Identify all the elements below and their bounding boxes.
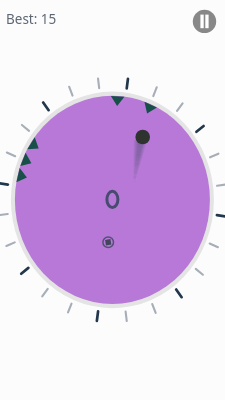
button[interactable]: Best: 15 [6,10,57,28]
staticText: Best: 15 [6,10,57,28]
button[interactable]: Sound [100,234,117,251]
button[interactable]: Pause [193,10,216,33]
